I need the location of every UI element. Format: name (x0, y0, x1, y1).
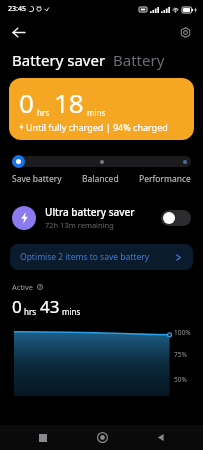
staticText: 0 (19, 85, 34, 120)
staticText: Performance (139, 173, 191, 185)
button[interactable]: 0 (9, 78, 194, 140)
staticText: hrs (24, 306, 37, 317)
staticText: 75% (174, 350, 187, 359)
staticText: Battery (113, 50, 165, 70)
button[interactable]: Back (145, 425, 175, 450)
button[interactable]: Recents (28, 425, 58, 450)
button[interactable]: Battery saver (12, 50, 106, 70)
button[interactable]: Performance (178, 155, 191, 168)
button[interactable]: Optimise 2 items to save battery (10, 244, 193, 270)
staticText: 43 (40, 295, 60, 318)
button[interactable]: Ultra battery saver (0, 201, 203, 234)
staticText: Save battery (12, 173, 62, 185)
staticText: mins (87, 107, 106, 118)
button[interactable]: Ultra battery saver toggle (161, 210, 191, 226)
button[interactable]: Save battery (12, 155, 25, 168)
staticText: 18 (54, 85, 84, 120)
button[interactable]: Battery (113, 50, 165, 70)
button[interactable]: Balanced (95, 155, 108, 168)
staticText: 72h 13m remaining (45, 220, 114, 230)
staticText: 100% (174, 328, 191, 337)
staticText: mins (62, 306, 81, 317)
button[interactable]: Settings (173, 20, 197, 44)
staticText: 23:45 (8, 4, 26, 14)
staticText: Battery saver (12, 50, 106, 70)
staticText: Until fully charged | 94% charged (26, 121, 168, 133)
staticText: 50% (174, 375, 187, 384)
button[interactable]: Home (87, 425, 117, 450)
button[interactable]: Back (6, 20, 30, 44)
staticText: Ultra battery saver (45, 205, 135, 219)
staticText: Optimise 2 items to save battery (20, 251, 150, 263)
staticText: Active (12, 282, 34, 292)
staticText: 0 (12, 295, 22, 318)
staticText: hrs (37, 107, 50, 118)
staticText: Balanced (82, 173, 119, 185)
